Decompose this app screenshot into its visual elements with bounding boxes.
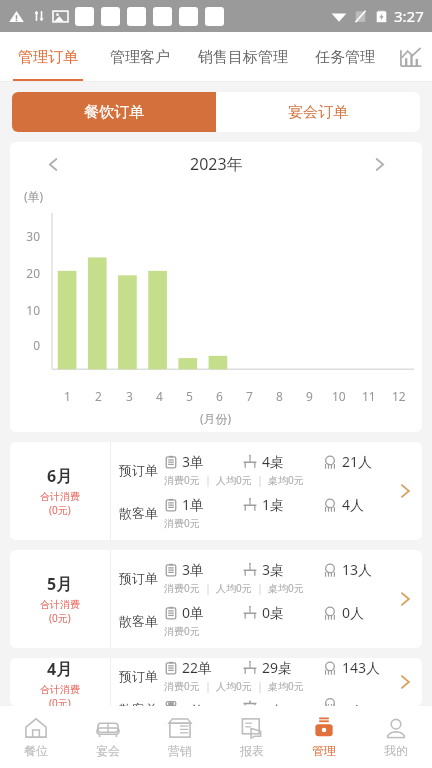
staticText: 11 (362, 388, 376, 404)
button[interactable]: 宴会订单 (216, 92, 420, 132)
staticText: 消费0元 (164, 473, 200, 487)
staticText: 5 (186, 388, 193, 404)
button[interactable]: 6月 (10, 442, 422, 540)
staticText: 0 (10, 337, 40, 353)
staticText: 4人 (342, 495, 365, 514)
staticText: 人均0元 (216, 581, 252, 595)
staticText: 9 (306, 388, 313, 404)
button[interactable]: 营销 (144, 706, 216, 768)
staticText: 我的 (384, 743, 408, 758)
staticText: 管理订单 (18, 48, 78, 67)
staticText: 2 (95, 388, 102, 404)
staticText: 143人 (342, 658, 381, 677)
staticText: (0元) (49, 696, 71, 706)
staticText: 宴会订单 (288, 103, 348, 122)
staticText: | (252, 679, 268, 693)
staticText: 0人 (342, 603, 365, 622)
button[interactable]: 报表 (216, 706, 288, 768)
staticText: 合计消费 (40, 683, 80, 696)
staticText: 消费0元 (164, 624, 200, 638)
button[interactable]: 5月 (10, 550, 422, 648)
staticText: 散客单 (119, 701, 158, 706)
button[interactable]: 下一年 (362, 147, 396, 181)
staticText: 散客单 (119, 505, 158, 521)
staticText: 1桌 (262, 495, 285, 514)
staticText: 餐饮订单 (84, 103, 144, 122)
staticText: 预订单 (119, 570, 158, 586)
staticText: 餐位 (24, 743, 48, 758)
staticText: 人均0元 (216, 473, 252, 487)
staticText: 29桌 (262, 658, 293, 677)
staticText: 4桌 (262, 452, 285, 471)
staticText: 营销 (168, 743, 192, 758)
staticText: 1 (64, 388, 71, 404)
staticText: (0元) (49, 503, 71, 517)
staticText: 管理 (312, 743, 336, 758)
staticText: (0元) (49, 611, 71, 625)
staticText: 人均0元 (216, 679, 252, 693)
button[interactable]: 任务管理 (300, 32, 390, 82)
button[interactable]: 宴会 (72, 706, 144, 768)
staticText: | (200, 581, 216, 595)
staticText: 管理客户 (110, 48, 170, 67)
staticText: 5月 (47, 573, 73, 595)
staticText: 12 (392, 388, 406, 404)
staticText: 6 (216, 388, 223, 404)
staticText: 0单 (182, 603, 205, 622)
staticText: | (252, 581, 268, 595)
staticText: 10 (332, 388, 346, 404)
staticText: 6月 (47, 465, 73, 487)
staticText: 3单 (182, 560, 205, 579)
staticText: 合计消费 (40, 490, 80, 503)
staticText: 3:27 (394, 6, 424, 26)
staticText: 20 (10, 265, 40, 281)
button[interactable]: 4月 (10, 658, 422, 706)
staticText: | (200, 473, 216, 487)
button[interactable]: 餐饮订单 (12, 92, 216, 132)
staticText: 桌均0元 (268, 473, 304, 487)
button[interactable]: 餐位 (0, 706, 72, 768)
staticText: 4 (156, 388, 163, 404)
staticText: 合计消费 (40, 598, 80, 611)
staticText: 0桌 (262, 603, 285, 622)
staticText: 消费0元 (164, 516, 200, 530)
staticText: 0单 (182, 701, 205, 706)
staticText: 4月 (47, 658, 73, 680)
staticText: 0人 (342, 701, 365, 706)
staticText: 3桌 (262, 560, 285, 579)
button[interactable]: 销售目标管理 (185, 32, 300, 82)
staticText: 宴会 (96, 743, 120, 758)
staticText: 22单 (182, 658, 213, 677)
button[interactable]: 统计图表 (390, 32, 432, 82)
button[interactable]: 管理客户 (95, 32, 185, 82)
staticText: 7 (246, 388, 253, 404)
button[interactable]: 管理 (288, 706, 360, 768)
staticText: 预订单 (119, 668, 158, 684)
staticText: 3 (126, 388, 133, 404)
staticText: | (200, 679, 216, 693)
staticText: 桌均0元 (268, 679, 304, 693)
staticText: 1单 (182, 495, 205, 514)
staticText: 销售目标管理 (198, 48, 288, 67)
staticText: 3单 (182, 452, 205, 471)
staticText: 桌均0元 (268, 581, 304, 595)
staticText: 10 (10, 302, 40, 318)
staticText: 消费0元 (164, 679, 200, 693)
staticText: | (252, 473, 268, 487)
staticText: (单) (24, 188, 44, 204)
staticText: 21人 (342, 452, 373, 471)
staticText: 报表 (240, 743, 264, 758)
staticText: 消费0元 (164, 581, 200, 595)
staticText: 8 (276, 388, 283, 404)
staticText: 散客单 (119, 613, 158, 629)
staticText: 2023年 (190, 153, 243, 175)
staticText: (月份) (200, 410, 232, 426)
button[interactable]: 上一年 (36, 147, 70, 181)
staticText: 预订单 (119, 462, 158, 478)
button[interactable]: 我的 (360, 706, 432, 768)
staticText: 0桌 (262, 701, 285, 706)
staticText: 30 (10, 228, 40, 244)
staticText: 任务管理 (315, 48, 375, 67)
staticText: 13人 (342, 560, 373, 579)
button[interactable]: 管理订单 (0, 32, 95, 82)
